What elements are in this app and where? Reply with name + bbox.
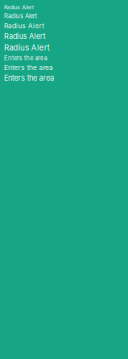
- staticText: Radius Alert: [4, 4, 34, 10]
- staticText: Radius Alert: [4, 22, 44, 30]
- staticText: Enters the area: [4, 64, 53, 72]
- staticText: Radius Alert: [4, 43, 50, 52]
- staticText: Radius Alert: [4, 12, 37, 20]
- staticText: Enters the area: [4, 54, 47, 62]
- staticText: Enters the area: [4, 74, 54, 83]
- staticText: Radius Alert: [4, 32, 45, 41]
